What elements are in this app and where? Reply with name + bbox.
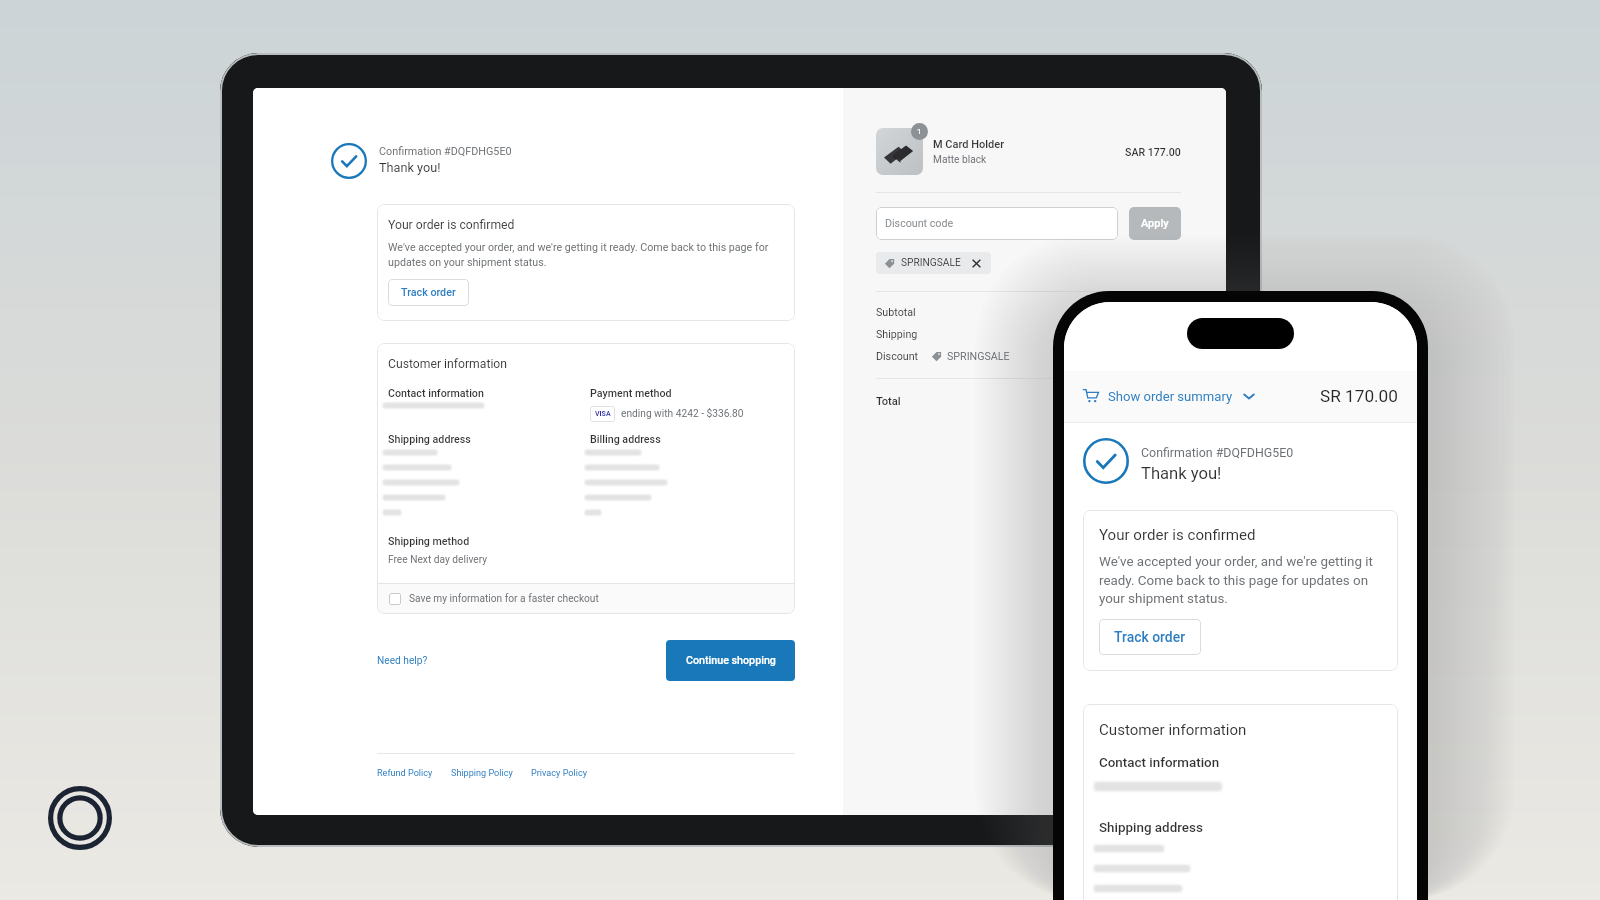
staticText: Track order [401, 286, 456, 299]
staticText: Billing address [590, 433, 661, 446]
staticText: Apply [1141, 217, 1169, 230]
button[interactable]: Show order summary [1064, 371, 1417, 422]
staticText: Contact information [1099, 755, 1220, 771]
staticText: Shipping [876, 328, 918, 341]
staticText: Customer information [1099, 721, 1247, 739]
button[interactable]: Save my information for a faster checkou… [377, 584, 795, 614]
staticText: Confirmation #DQFDHG5E0 [1141, 445, 1294, 460]
button[interactable]: SPRINGSALE [876, 252, 991, 274]
staticText: SAR 177.00 [1125, 146, 1181, 158]
button[interactable]: Privacy Policy [531, 768, 587, 779]
staticText: Customer information [388, 357, 508, 371]
staticText: Contact information [388, 387, 484, 400]
staticText: M Card Holder [933, 138, 1005, 151]
staticText: Shipping method [388, 535, 470, 548]
staticText: Continue shopping [686, 654, 776, 667]
button[interactable]: Track order [1099, 619, 1201, 655]
button[interactable]: Need help? [377, 652, 428, 670]
button[interactable]: Apply [1129, 207, 1181, 240]
button[interactable]: Track order [388, 279, 469, 306]
staticText: Discount [876, 350, 919, 363]
staticText: Subtotal [876, 306, 916, 319]
staticText: Payment method [590, 387, 672, 400]
staticText: ending with 4242 - $336.80 [621, 408, 744, 420]
staticText: Refund Policy [377, 768, 433, 779]
staticText: 1 [917, 127, 922, 136]
button[interactable]: Continue shopping [666, 640, 795, 681]
staticText: Need help? [377, 655, 428, 667]
button[interactable]: Discount code [876, 207, 1118, 240]
button[interactable]: Refund Policy [377, 768, 433, 779]
staticText: Free Next day delivery [388, 554, 488, 566]
staticText: VISA [595, 410, 611, 418]
staticText: Show order summary [1108, 389, 1233, 404]
staticText: Discount code [885, 217, 954, 230]
other: Remove discount [971, 258, 982, 269]
staticText: Your order is confirmed [1099, 526, 1256, 544]
staticText: Thank you! [1141, 464, 1222, 483]
staticText: Shipping address [1099, 820, 1203, 836]
staticText: Track order [1114, 629, 1186, 645]
staticText: We've accepted your order, and we're get… [1099, 554, 1373, 606]
staticText: We've accepted your order, and we're get… [388, 241, 769, 269]
staticText: Shipping Policy [451, 768, 513, 779]
staticText: Save my information for a faster checkou… [409, 593, 599, 605]
staticText: Matte black [933, 154, 987, 166]
staticText: Privacy Policy [531, 768, 587, 779]
staticText: Shipping address [388, 433, 471, 446]
staticText: SR 170.00 [1320, 386, 1398, 406]
staticText: SPRINGSALE [901, 257, 961, 269]
staticText: Your order is confirmed [388, 218, 515, 232]
staticText: Total [876, 395, 901, 408]
button[interactable]: Shipping Policy [451, 768, 513, 779]
staticText: SPRINGSALE [947, 350, 1010, 363]
staticText: Confirmation #DQFDHG5E0 [379, 145, 512, 158]
staticText: Thank you! [379, 160, 441, 175]
